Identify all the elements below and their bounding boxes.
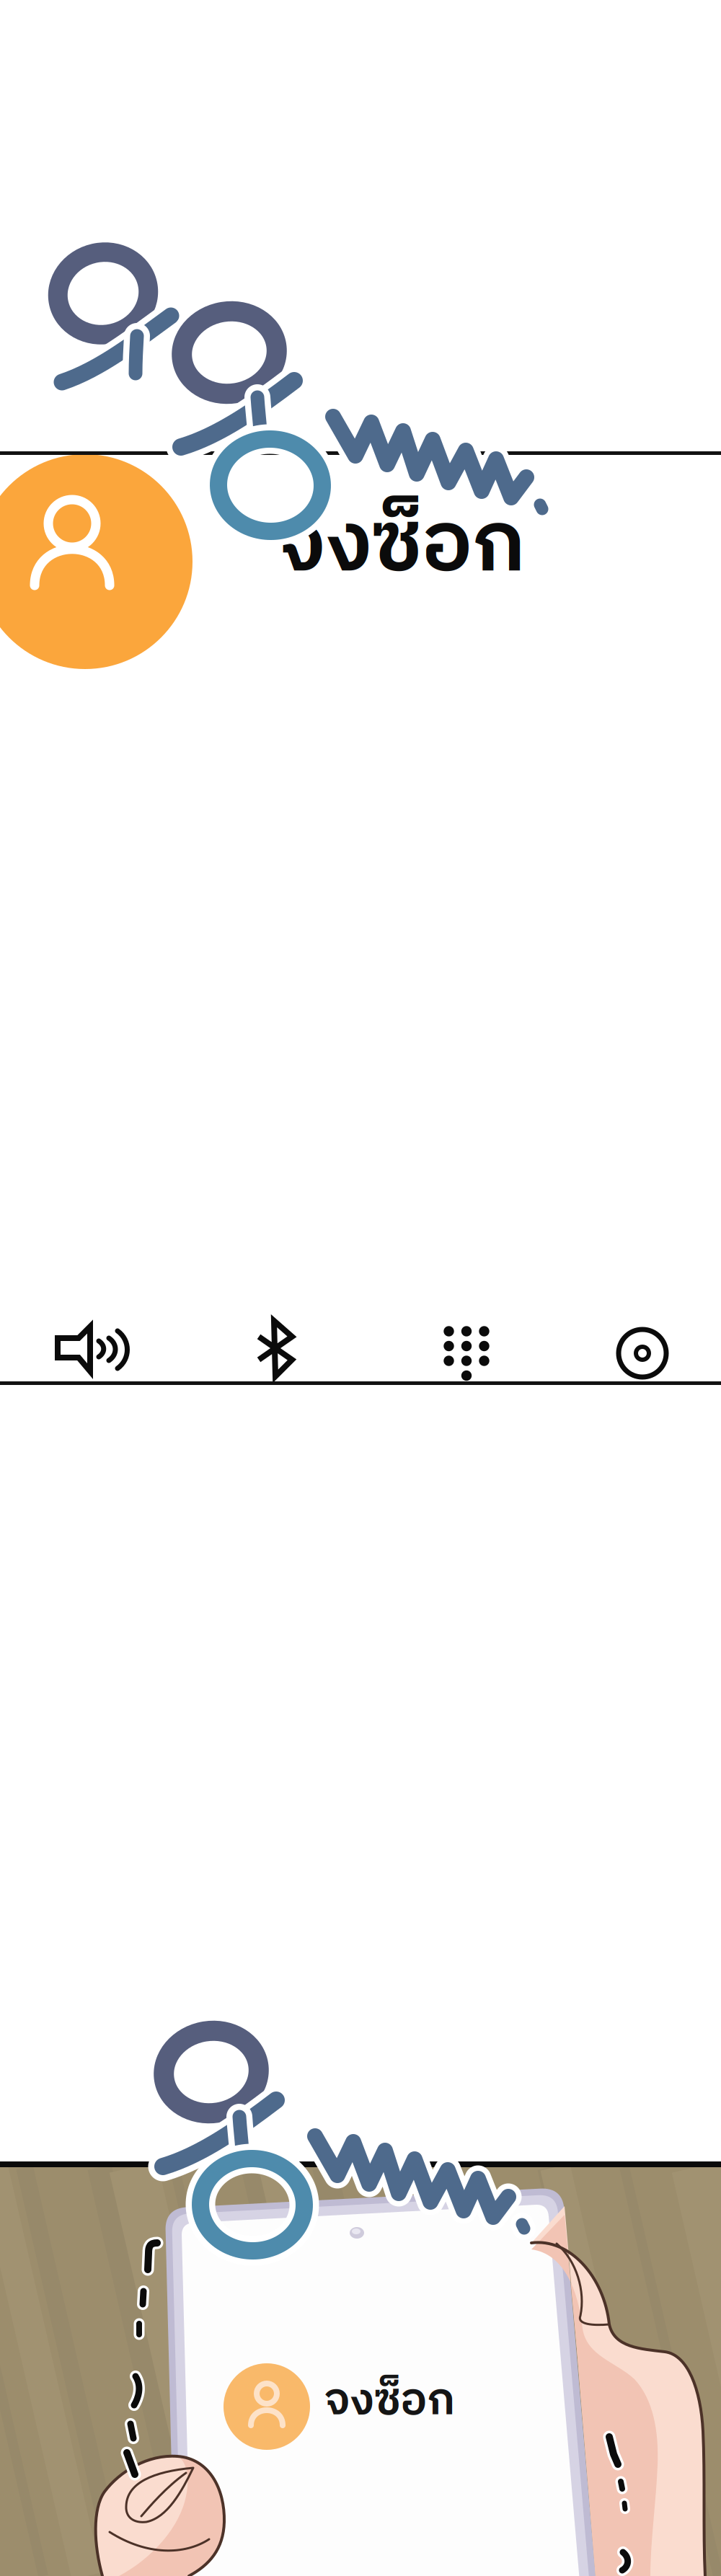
button[interactable]: Bluetooth <box>0 0 721 2576</box>
button[interactable]: Record <box>0 0 721 2576</box>
button[interactable]: Keypad <box>0 0 721 2576</box>
button[interactable]: Speaker <box>0 0 721 2576</box>
staticText: จงซ็อก <box>325 2365 455 2438</box>
staticText: จงซ็อก <box>278 476 526 616</box>
